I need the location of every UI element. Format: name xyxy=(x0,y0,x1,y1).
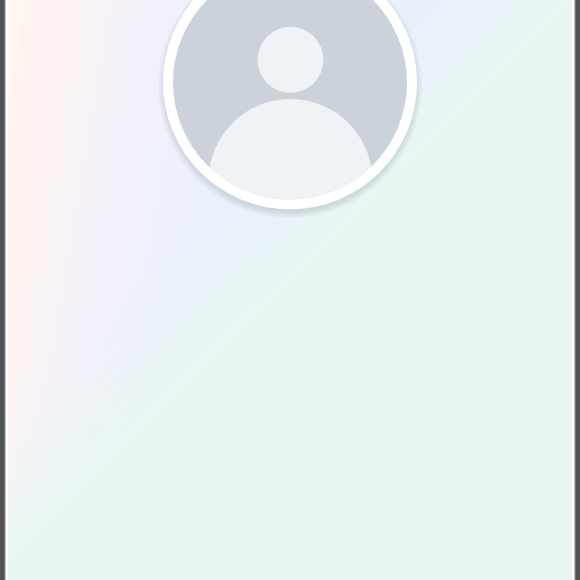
button[interactable]: Profile photo xyxy=(163,0,417,210)
